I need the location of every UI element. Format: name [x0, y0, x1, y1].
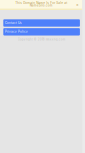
- staticText: NameSilo.com: [30, 3, 53, 7]
- staticText: This Domain Name Is For Sale at: [15, 1, 67, 5]
- staticText: Copyright © 2018 mnxxng.com: [18, 38, 65, 41]
- button[interactable]: Contact Us: [3, 19, 80, 27]
- button[interactable]: Dismiss: [75, 2, 80, 7]
- staticText: Privacy Policy: [5, 30, 28, 33]
- button[interactable]: Privacy Policy: [3, 28, 80, 35]
- staticText: ×: [76, 2, 79, 7]
- staticText: Contact Us: [5, 21, 22, 25]
